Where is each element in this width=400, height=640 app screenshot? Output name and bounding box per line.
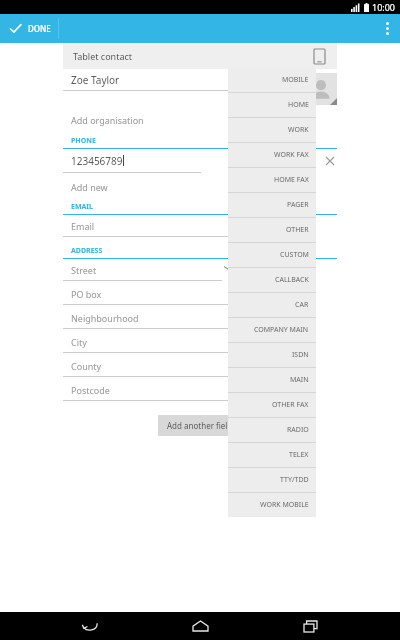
button[interactable]: Street — [63, 259, 233, 281]
staticText: Street — [71, 264, 97, 276]
button[interactable]: PAGER — [228, 193, 316, 217]
staticText: PHONE — [71, 136, 96, 146]
button[interactable]: DONE — [0, 14, 58, 43]
button[interactable]: CUSTOM — [228, 243, 316, 267]
staticText: MOBILE — [282, 75, 309, 85]
staticText: DONE — [28, 23, 51, 34]
staticText: City — [71, 336, 87, 348]
button[interactable]: RADIO — [228, 418, 316, 442]
staticText: OTHER FAX — [272, 400, 309, 410]
button[interactable]: COMPANY MAIN — [228, 318, 316, 342]
button[interactable]: WORK — [228, 118, 316, 142]
staticText: Zoe Taylor — [71, 73, 286, 87]
staticText: Neighbourhood — [71, 312, 139, 324]
button[interactable]: Add new — [71, 181, 108, 193]
button[interactable]: Zoe Taylor — [63, 73, 301, 90]
button[interactable]: PO box — [63, 281, 233, 305]
button[interactable]: HOME FAX — [228, 168, 316, 192]
staticText: CALLBACK — [275, 275, 309, 285]
button[interactable]: Home — [180, 612, 220, 640]
staticText: ISDN — [292, 350, 309, 360]
button[interactable]: Tablet contact — [63, 43, 337, 69]
button[interactable]: CAR — [228, 293, 316, 317]
staticText: PAGER — [287, 200, 309, 210]
button[interactable]: WORK FAX — [228, 143, 316, 167]
staticText: County — [71, 360, 102, 372]
button[interactable]: Add another field — [158, 415, 242, 436]
staticText: PO box — [71, 288, 102, 300]
button[interactable]: OTHER — [228, 218, 316, 242]
button[interactable]: MOBILE — [228, 68, 316, 92]
staticText: RADIO — [287, 425, 309, 435]
button[interactable]: Email — [71, 220, 95, 232]
button[interactable]: OTHER FAX — [228, 393, 316, 417]
staticText: 10:00 — [372, 1, 396, 13]
button[interactable]: County — [63, 353, 233, 377]
staticText: ADDRESS — [71, 246, 103, 256]
staticText: COMPANY MAIN — [254, 325, 309, 335]
staticText: TTY/TDD — [280, 475, 309, 485]
button[interactable]: WORK MOBILE — [228, 493, 316, 517]
button[interactable]: City — [63, 329, 233, 353]
staticText: Add another field — [167, 420, 233, 431]
staticText: Postcode — [71, 384, 110, 396]
button[interactable]: TELEX — [228, 443, 316, 467]
button[interactable]: TTY/TDD — [228, 468, 316, 492]
staticText: MOBILE — [286, 156, 313, 166]
button[interactable]: Add organisation — [71, 114, 144, 126]
button[interactable]: Contact photo — [305, 73, 337, 105]
staticText: HOME — [288, 100, 309, 110]
button[interactable]: 123456789 — [63, 149, 337, 173]
staticText: Tablet contact — [73, 50, 133, 62]
staticText: HOME FAX — [274, 175, 309, 185]
button[interactable]: HOME — [228, 93, 316, 117]
button[interactable]: ISDN — [228, 343, 316, 367]
button[interactable]: More options — [374, 14, 400, 43]
button[interactable]: Postcode — [63, 377, 233, 401]
staticText: EMAIL — [71, 202, 94, 212]
staticText: MAIN — [290, 375, 309, 385]
button[interactable]: Remove phone — [323, 154, 337, 168]
button[interactable]: Recent apps — [290, 612, 330, 640]
staticText: CAR — [295, 300, 309, 310]
staticText: CUSTOM — [280, 250, 309, 260]
staticText: WORK MOBILE — [260, 500, 309, 510]
staticText: WORK FAX — [274, 150, 309, 160]
button[interactable]: CALLBACK — [228, 268, 316, 292]
staticText: WORK — [288, 125, 309, 135]
button[interactable]: MAIN — [228, 368, 316, 392]
staticText: TELEX — [289, 450, 309, 460]
button[interactable]: Back — [70, 612, 110, 640]
staticText: 123456789 — [71, 154, 123, 168]
button[interactable]: Neighbourhood — [63, 305, 233, 329]
staticText: OTHER — [286, 225, 309, 235]
